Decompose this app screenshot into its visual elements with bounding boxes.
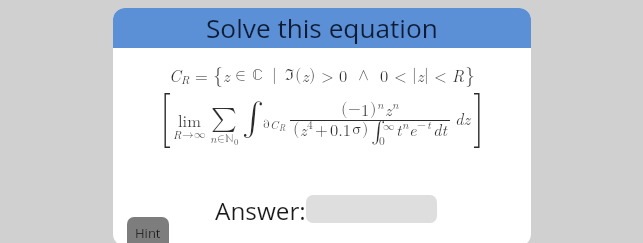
staticText: n	[402, 116, 409, 132]
staticText: ∂	[263, 119, 270, 131]
staticText: ∫	[242, 101, 264, 134]
staticText: z	[417, 63, 424, 86]
staticText: R	[279, 121, 286, 134]
staticText: R	[173, 126, 182, 142]
staticText: −	[417, 119, 427, 131]
staticText: 0	[380, 63, 389, 86]
staticText: )	[309, 67, 316, 84]
staticText: ∞	[383, 121, 395, 133]
staticText: e	[409, 117, 417, 140]
staticText: ∈	[217, 133, 225, 145]
staticText: z	[223, 63, 230, 86]
staticText: 1	[361, 97, 370, 120]
staticText: ∑	[211, 106, 237, 131]
button[interactable]: Solve this equation	[113, 8, 531, 48]
staticText: =	[195, 63, 208, 86]
staticText: ℂ	[252, 67, 264, 84]
staticText: (	[295, 67, 302, 84]
staticText: 0	[339, 63, 348, 86]
staticText: C	[270, 116, 279, 132]
staticText: t	[396, 117, 402, 140]
staticText: ℑ	[285, 67, 295, 84]
staticText: |	[412, 67, 417, 84]
staticText: )	[362, 121, 369, 138]
staticText: dt	[433, 117, 447, 140]
staticText: +	[315, 117, 328, 140]
staticText: Answer:	[215, 194, 306, 227]
staticText: ∈	[235, 67, 247, 84]
staticText: 4	[307, 116, 313, 132]
staticText: n	[377, 96, 384, 112]
staticText: 0	[379, 132, 385, 148]
staticText: 0	[234, 135, 239, 148]
staticText: |	[424, 67, 429, 84]
staticText: ℕ	[225, 133, 234, 145]
button[interactable]	[306, 195, 437, 223]
staticText: lim	[178, 108, 201, 131]
staticText: (	[341, 101, 348, 118]
staticText: ∧	[358, 67, 370, 84]
staticText: <	[434, 63, 447, 86]
staticText: n	[392, 96, 399, 112]
staticText: →	[182, 129, 194, 141]
staticText: ∫	[371, 121, 386, 143]
staticText: )	[370, 101, 377, 118]
staticText: C	[169, 63, 181, 86]
staticText: Solve this equation	[206, 10, 438, 46]
staticText: R	[181, 71, 190, 87]
staticText: >	[321, 63, 334, 86]
staticText: z	[300, 117, 307, 140]
staticText: −	[348, 101, 361, 118]
staticText: Hint	[135, 224, 161, 242]
staticText: z	[302, 63, 309, 86]
staticText: ∞	[194, 129, 206, 141]
staticText: 0.1	[330, 117, 352, 140]
staticText: t	[427, 116, 431, 132]
staticText: σ	[352, 121, 362, 138]
staticText: n	[210, 130, 217, 146]
staticText: z	[385, 97, 392, 120]
staticText: <	[394, 63, 407, 86]
staticText: R	[452, 63, 465, 86]
staticText: |	[272, 67, 277, 84]
staticText: (	[293, 121, 300, 138]
staticText: dz	[455, 106, 471, 129]
staticText: {	[213, 66, 223, 86]
staticText: }	[465, 66, 475, 86]
button[interactable]: Hint	[127, 217, 169, 243]
